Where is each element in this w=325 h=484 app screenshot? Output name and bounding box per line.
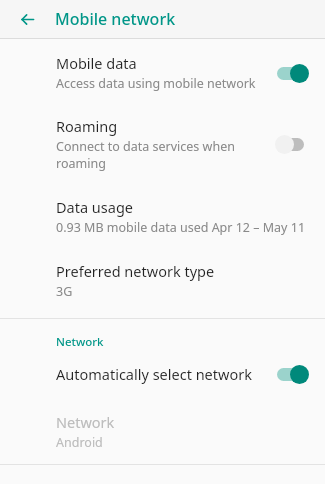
- staticText: Android: [56, 434, 103, 451]
- staticText: Connect to data services when roaming: [56, 138, 267, 172]
- button[interactable]: Preferred network type: [0, 246, 325, 312]
- staticText: Automatically select network: [56, 364, 252, 384]
- staticText: Network: [56, 334, 104, 350]
- button[interactable]: Mobile data: [0, 45, 325, 102]
- staticText: Preferred network type: [56, 261, 215, 281]
- staticText: Network: [56, 412, 115, 432]
- staticText: 3G: [56, 283, 73, 300]
- staticText: Roaming: [56, 116, 118, 136]
- staticText: Mobile data: [56, 53, 137, 73]
- button[interactable]: Back: [12, 4, 42, 34]
- button[interactable]: Automatically select network: [0, 356, 325, 396]
- staticText: Mobile network: [55, 8, 176, 30]
- button[interactable]: Roaming: [0, 102, 325, 182]
- button[interactable]: Data usage: [0, 182, 325, 246]
- button[interactable]: Network: [0, 396, 325, 464]
- staticText: Data usage: [56, 197, 133, 217]
- staticText: Access data using mobile network: [56, 75, 256, 92]
- staticText: 0.93 MB mobile data used Apr 12 – May 11: [56, 219, 306, 236]
